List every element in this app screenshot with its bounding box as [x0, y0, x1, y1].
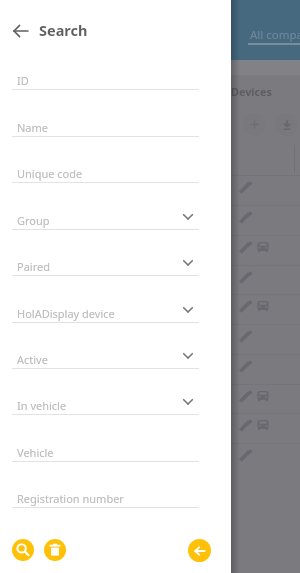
button[interactable]: Registration number [0, 476, 231, 508]
staticText: Devices [231, 84, 272, 99]
staticText: Search [39, 20, 88, 40]
staticText: All companies [250, 27, 300, 43]
button[interactable]: All companies [243, 22, 300, 46]
button[interactable] [0, 384, 300, 414]
staticText: Unique code [17, 166, 83, 181]
button[interactable]: Active [0, 337, 231, 369]
button[interactable]: Download [275, 113, 298, 136]
button[interactable] [0, 294, 300, 324]
button[interactable]: Unique code [0, 151, 231, 183]
staticText: In vehicle [17, 398, 67, 413]
button[interactable] [0, 175, 300, 205]
button[interactable]: ID [0, 58, 231, 90]
button[interactable]: In vehicle [0, 383, 231, 415]
button[interactable]: Vehicle [0, 430, 231, 462]
button[interactable] [0, 413, 300, 443]
staticText: Name [17, 120, 49, 135]
button[interactable] [0, 354, 300, 384]
staticText: Active [17, 352, 48, 367]
staticText: Vehicle [17, 445, 54, 460]
button[interactable]: Back [5, 15, 37, 47]
button[interactable]: Group [0, 198, 231, 230]
button[interactable]: Search [12, 539, 34, 561]
staticText: Group [17, 213, 50, 228]
button[interactable] [0, 324, 300, 354]
staticText: Registration number [17, 491, 124, 506]
staticText: Paired [17, 259, 50, 274]
button[interactable]: Clear filters [44, 539, 66, 561]
button[interactable] [0, 443, 300, 473]
button[interactable]: Name [0, 105, 231, 137]
button[interactable] [0, 205, 300, 235]
staticText: ID [17, 73, 29, 88]
button[interactable]: Paired [0, 244, 231, 276]
staticText: HolADisplay device [17, 306, 115, 321]
button[interactable]: HolADisplay device [0, 291, 231, 323]
button[interactable] [0, 235, 300, 265]
button[interactable] [0, 265, 300, 295]
button[interactable]: Go back [188, 539, 211, 562]
